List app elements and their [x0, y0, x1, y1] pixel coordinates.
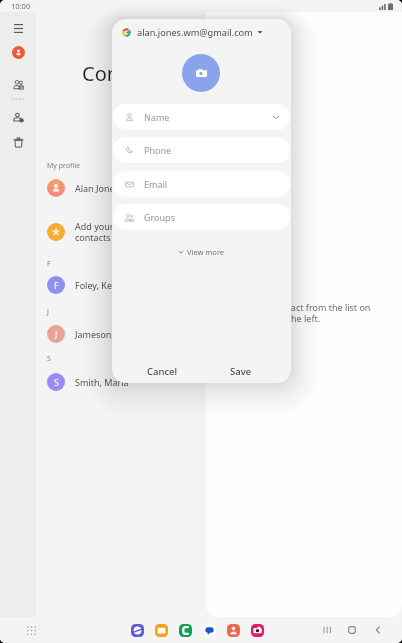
staticText: Phone — [144, 144, 172, 156]
button[interactable]: Phone — [179, 624, 192, 637]
button[interactable]: View more — [112, 245, 291, 259]
button[interactable]: Internet — [131, 624, 144, 637]
staticText: Jameson, Amy — [75, 328, 135, 340]
staticText: S — [47, 354, 51, 364]
button[interactable]: Email — [113, 171, 290, 197]
button[interactable]: Trash — [6, 130, 30, 154]
button[interactable]: Contacts — [227, 624, 240, 637]
button[interactable]: Groups — [6, 72, 30, 96]
staticText: Save — [230, 365, 252, 378]
button[interactable]: Menu — [6, 16, 30, 40]
staticText: Select a contact from the list on the le… — [206, 301, 402, 325]
staticText: J — [47, 307, 49, 317]
button[interactable]: Camera — [251, 624, 264, 637]
staticText: View more — [187, 247, 225, 257]
button[interactable]: Name — [113, 104, 290, 130]
staticText: Cancel — [147, 365, 178, 378]
button[interactable]: Groups — [113, 204, 290, 230]
staticText: Contacts — [82, 60, 164, 87]
button[interactable]: Files — [155, 624, 168, 637]
staticText: Add your contacts — [75, 220, 114, 244]
button[interactable]: Manage contacts — [6, 105, 30, 129]
staticText: F — [54, 279, 59, 291]
button[interactable]: S — [36, 369, 206, 395]
button[interactable]: alan.jones.wm@gmail.com — [122, 23, 263, 41]
button[interactable]: Recents — [320, 623, 334, 637]
staticText: Smith, Maria — [75, 376, 129, 388]
button[interactable]: Save — [216, 360, 266, 382]
button[interactable]: Alan Jones — [36, 175, 206, 201]
staticText: Email — [144, 178, 168, 190]
button[interactable]: Cancel — [137, 360, 187, 382]
button[interactable]: Add your contacts — [36, 213, 206, 251]
staticText: alan.jones.wm@gmail.com — [137, 26, 253, 39]
staticText: S — [54, 376, 59, 388]
staticText: My profile — [47, 161, 80, 171]
button[interactable]: J — [36, 321, 206, 347]
staticText: 10:00 — [11, 1, 31, 11]
button[interactable]: Messages — [203, 624, 216, 637]
staticText: F — [47, 259, 51, 269]
staticText: Foley, Kevin — [75, 279, 125, 291]
button[interactable]: F — [36, 272, 206, 298]
button[interactable]: Apps — [23, 622, 39, 638]
staticText: Name — [144, 111, 170, 123]
staticText: J — [55, 328, 58, 340]
button[interactable]: Add photo — [182, 54, 220, 92]
button[interactable]: Phone — [113, 137, 290, 163]
staticText: Groups — [144, 211, 175, 223]
button[interactable]: Contacts — [6, 40, 30, 64]
staticText: Alan Jones — [75, 182, 119, 194]
button[interactable]: Back — [371, 623, 385, 637]
button[interactable]: Home — [345, 623, 359, 637]
